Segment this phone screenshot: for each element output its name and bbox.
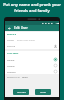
button[interactable]: Typing [5,62,59,68]
button[interactable]: SAVE [35,89,51,95]
button[interactable]: Back [7,26,12,31]
staticText: LAST SEEN [7,52,19,55]
staticText: SAVE [40,91,46,94]
staticText: CANCEL [17,91,26,94]
staticText: friends and family [14,8,50,13]
staticText: Online [7,58,15,61]
staticText: Edit User [14,26,28,30]
button[interactable]: PHONE [5,43,59,49]
staticText: Typing [7,64,15,67]
staticText: Put any name and prank your [3,2,61,7]
staticText: PROFILE PIC [7,76,20,79]
button[interactable]: Pick contact [53,44,57,48]
button[interactable]: NAME [5,37,59,43]
button[interactable]: Custom [5,68,59,74]
staticText: NAME [7,39,14,42]
staticText: select [22,76,28,79]
staticText: PHONE [7,45,15,48]
staticText: PROFILE [7,33,17,36]
staticText: Enter user name [17,39,35,42]
button[interactable]: Online [5,56,59,62]
button[interactable]: CANCEL [13,89,29,95]
staticText: Custom [7,70,16,73]
